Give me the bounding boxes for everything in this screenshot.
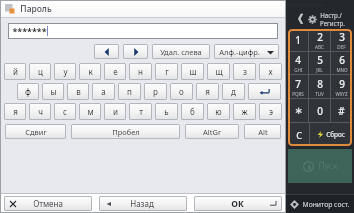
button[interactable]: 4	[288, 52, 308, 74]
button[interactable]: ж	[233, 103, 256, 120]
button[interactable]	[123, 44, 148, 59]
button[interactable]: ф	[17, 83, 39, 100]
staticText: Пароль	[20, 3, 52, 15]
staticText: ABC	[315, 44, 324, 50]
button[interactable]: 7	[288, 75, 308, 98]
button[interactable]: т	[129, 103, 152, 120]
button[interactable]: #	[331, 99, 352, 122]
staticText: ж	[241, 106, 248, 117]
staticText: Регистр.	[320, 19, 345, 27]
staticText: и	[113, 106, 118, 117]
button[interactable]: х	[259, 63, 282, 80]
button[interactable]: Отмена	[4, 196, 92, 211]
button[interactable]: о	[170, 83, 193, 100]
staticText: Назад	[130, 198, 154, 209]
staticText: *******	[12, 25, 47, 37]
staticText: д	[231, 86, 236, 97]
button[interactable]: Удал. слева	[152, 44, 210, 59]
button[interactable]	[94, 44, 119, 59]
staticText: р	[153, 86, 158, 97]
button[interactable]: ь	[155, 103, 178, 120]
staticText: у	[63, 66, 68, 77]
button[interactable]: э	[259, 103, 282, 120]
staticText: Удал. слева	[160, 47, 202, 57]
button[interactable]: е	[104, 63, 126, 80]
button[interactable]: а	[92, 83, 115, 100]
staticText: ш	[189, 66, 197, 77]
staticText: 4	[295, 53, 301, 67]
button[interactable]: з	[233, 63, 256, 80]
button[interactable]: и	[104, 103, 126, 120]
staticText: Пуск	[318, 160, 338, 172]
staticText: х	[268, 66, 273, 77]
button[interactable]: м	[79, 103, 101, 120]
button[interactable]: ч	[29, 103, 51, 120]
staticText: Сдвиг	[25, 127, 47, 137]
button[interactable]: ∗	[288, 99, 308, 122]
button[interactable]: ц	[29, 63, 51, 80]
button[interactable]: C	[288, 123, 309, 146]
staticText: JKL	[316, 67, 323, 73]
button[interactable]: н	[129, 63, 152, 80]
button[interactable]: Монитор сост.	[290, 195, 354, 213]
button[interactable]: 3	[331, 29, 352, 51]
button[interactable]: ы	[42, 83, 64, 100]
staticText: ю	[215, 106, 222, 117]
staticText: б	[190, 106, 195, 117]
button[interactable]: я	[196, 83, 219, 100]
button[interactable]: 2	[309, 29, 330, 51]
button[interactable]: ш	[181, 63, 204, 80]
staticText: Настр./	[320, 11, 342, 19]
staticText: э	[269, 106, 273, 117]
button[interactable]: AltGr	[185, 124, 239, 139]
button[interactable]: OK	[194, 196, 282, 211]
button[interactable]: Пуск	[288, 149, 352, 183]
staticText: 7	[295, 77, 301, 91]
staticText: з	[243, 66, 247, 77]
staticText: Отмена	[33, 198, 63, 209]
button[interactable]: ю	[207, 103, 230, 120]
button[interactable]: п	[118, 83, 141, 100]
button[interactable]: 8	[309, 75, 330, 98]
button[interactable]: Сброс	[310, 123, 352, 146]
button[interactable]: у	[54, 63, 76, 80]
button[interactable]: 1	[288, 29, 308, 51]
button[interactable]: Пробел	[71, 124, 180, 139]
staticText: н	[138, 66, 143, 77]
button[interactable]: Алф.-цифр.	[214, 44, 279, 59]
staticText: щ	[215, 66, 223, 77]
staticText: 5	[317, 53, 323, 67]
staticText: Пробел	[112, 127, 140, 137]
button[interactable]: Назад	[286, 9, 308, 29]
button[interactable]: к	[79, 63, 101, 80]
button[interactable]: д	[222, 83, 245, 100]
staticText: ь	[164, 106, 169, 117]
button[interactable]: 0	[309, 99, 330, 122]
staticText: WXYZ	[335, 91, 348, 97]
staticText: о	[179, 86, 184, 97]
staticText: 1	[295, 33, 301, 47]
button[interactable]	[248, 83, 281, 100]
button[interactable]: 9	[331, 75, 352, 98]
button[interactable]: щ	[207, 63, 230, 80]
button[interactable]: б	[181, 103, 204, 120]
staticText: Сброс	[326, 130, 345, 139]
button[interactable]: Alt	[244, 124, 281, 139]
staticText: ц	[38, 66, 43, 77]
button[interactable]: р	[144, 83, 167, 100]
button[interactable]: я	[4, 103, 26, 120]
button[interactable]: с	[54, 103, 76, 120]
button[interactable]: г	[155, 63, 178, 80]
button[interactable]: й	[4, 63, 26, 80]
button[interactable]: Сдвиг	[5, 124, 66, 139]
staticText: а	[101, 86, 106, 97]
button[interactable]: Назад	[99, 196, 187, 211]
button[interactable]: 6	[331, 52, 352, 74]
staticText: к	[88, 66, 93, 77]
staticText: TUV	[315, 91, 324, 97]
button[interactable]: Настр./	[308, 9, 354, 29]
button[interactable]: в	[67, 83, 89, 100]
staticText: ф	[25, 86, 31, 97]
button[interactable]: 5	[309, 52, 330, 74]
staticText: 0	[317, 104, 323, 118]
